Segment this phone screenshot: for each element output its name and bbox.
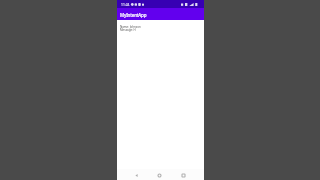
button[interactable]: Back	[131, 170, 141, 180]
staticText: 11:24	[121, 2, 130, 6]
staticText: Name: Johnson Message: H	[120, 25, 141, 32]
button[interactable]: Home	[154, 170, 164, 180]
staticText: MyIntentApp	[120, 12, 147, 18]
button[interactable]: Recents	[178, 170, 188, 180]
